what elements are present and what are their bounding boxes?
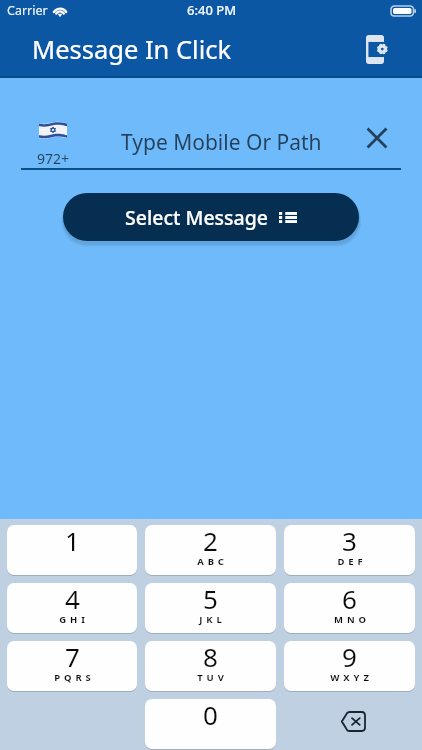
staticText: MNO — [334, 613, 370, 626]
staticText: Carrier — [7, 2, 48, 19]
staticText: Type Mobile Or Path — [121, 128, 322, 157]
staticText: 2 — [203, 525, 218, 558]
button[interactable]: 972+ — [30, 121, 76, 168]
button[interactable]: 2 — [145, 525, 276, 575]
button[interactable]: 3 — [284, 525, 415, 575]
button[interactable]: 0 — [145, 699, 276, 749]
button[interactable]: 7 — [7, 641, 137, 691]
staticText: 8 — [203, 641, 218, 674]
staticText: 4 — [65, 583, 80, 616]
staticText: 5 — [203, 583, 218, 616]
staticText: 1 — [65, 525, 80, 558]
button[interactable]: 4 — [7, 583, 137, 633]
staticText: DEF — [337, 555, 367, 568]
button[interactable]: 6 — [284, 583, 415, 633]
staticText: 9 — [342, 641, 357, 674]
staticText: JKL — [199, 613, 226, 626]
button[interactable]: Select Message — [63, 193, 359, 241]
staticText: WXYZ — [330, 671, 373, 684]
staticText: 0 — [203, 699, 218, 732]
button[interactable]: Clear — [362, 123, 392, 153]
staticText: 7 — [65, 641, 80, 674]
button[interactable]: 1 — [7, 525, 137, 575]
staticText: PQRS — [54, 671, 95, 684]
staticText: 6:40 PM — [187, 1, 237, 19]
button[interactable]: 5 — [145, 583, 276, 633]
button[interactable]: Backspace — [284, 699, 415, 749]
button[interactable]: 8 — [145, 641, 276, 691]
staticText: Select Message — [125, 204, 268, 231]
button[interactable]: 9 — [284, 641, 415, 691]
staticText: GHI — [59, 613, 89, 626]
button[interactable]: Device settings — [358, 32, 392, 66]
staticText: TUV — [197, 671, 228, 684]
staticText: ABC — [197, 555, 228, 568]
staticText: 3 — [342, 525, 357, 558]
staticText: Message In Click — [32, 32, 232, 67]
staticText: 972+ — [37, 149, 70, 168]
staticText: 6 — [342, 583, 357, 616]
